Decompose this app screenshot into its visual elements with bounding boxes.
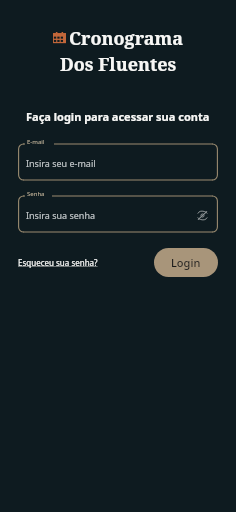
- staticText: Insira seu e-mail: [26, 157, 210, 169]
- staticText: Cronograma: [69, 26, 184, 51]
- button[interactable]: Insira sua senha: [18, 196, 218, 234]
- button[interactable]: Esqueceu sua senha?: [18, 253, 98, 272]
- button[interactable]: Mostrar senha: [194, 207, 210, 223]
- button[interactable]: Insira seu e-mail: [18, 144, 218, 182]
- staticText: Esqueceu sua senha?: [18, 257, 98, 268]
- button[interactable]: Login: [154, 248, 218, 277]
- staticText: Senha: [27, 190, 45, 198]
- staticText: Dos Fluentes: [60, 52, 177, 77]
- staticText: Login: [171, 255, 201, 270]
- staticText: Insira sua senha: [26, 209, 194, 221]
- staticText: Faça login para acessar sua conta: [26, 109, 210, 124]
- staticText: E-mail: [27, 138, 45, 146]
